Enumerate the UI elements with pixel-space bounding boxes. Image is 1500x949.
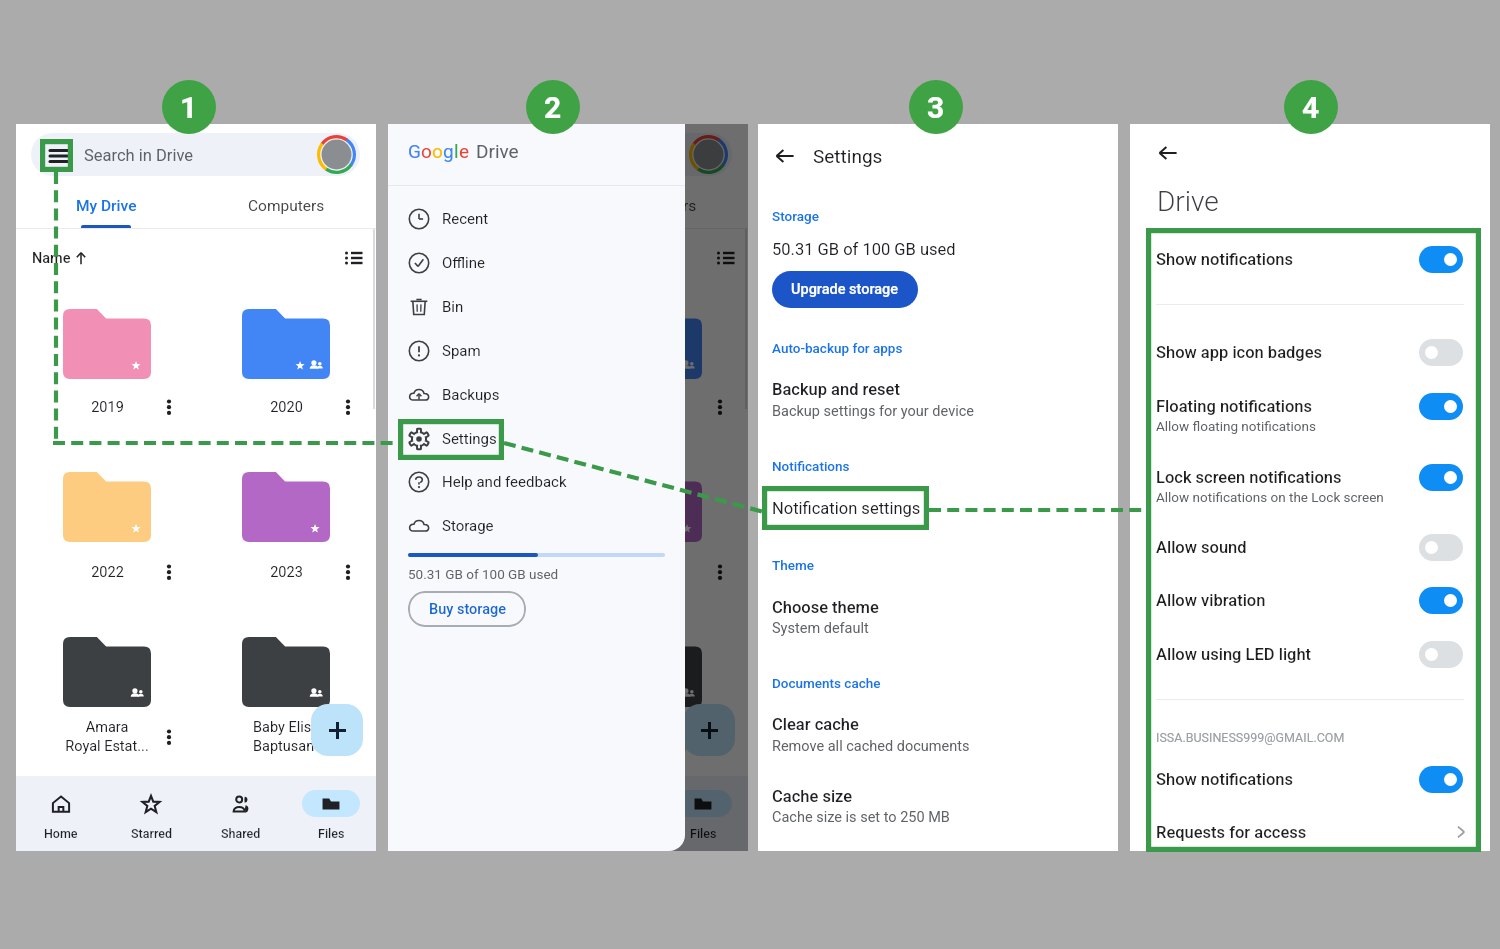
button[interactable]: My Drive <box>16 184 196 228</box>
button[interactable]: More options <box>337 559 359 585</box>
button[interactable]: Home <box>16 776 106 851</box>
button[interactable] <box>614 472 702 542</box>
button[interactable]: Amara Royal Estat... <box>63 713 151 761</box>
button[interactable] <box>388 285 685 329</box>
button[interactable]: Files <box>658 776 748 851</box>
button[interactable]: Back <box>775 146 795 166</box>
button[interactable]: More options <box>709 559 731 585</box>
button[interactable]: Menu <box>418 143 444 169</box>
button[interactable]: Back <box>1158 143 1178 163</box>
staticText: Auto-backup for apps <box>772 340 903 356</box>
button[interactable] <box>1130 386 1490 444</box>
button[interactable]: 2020 <box>242 383 330 431</box>
button[interactable] <box>1130 235 1490 283</box>
button[interactable] <box>242 309 330 379</box>
button[interactable]: Shared <box>196 776 286 851</box>
button[interactable]: Computers <box>568 184 748 228</box>
button[interactable]: More options <box>158 394 180 420</box>
staticText: Requests for access <box>1156 823 1307 842</box>
button[interactable]: Buy storage <box>408 591 526 627</box>
button[interactable] <box>388 373 685 417</box>
button[interactable]: More options <box>709 724 731 750</box>
button[interactable]: Files <box>286 776 376 851</box>
button[interactable]: More options <box>337 394 359 420</box>
button[interactable]: Account <box>689 135 728 174</box>
button[interactable]: Allow vibration on <box>1419 587 1463 614</box>
button[interactable]: Show notifications on <box>1419 246 1463 273</box>
button[interactable] <box>388 197 685 241</box>
button[interactable] <box>758 707 1118 761</box>
button[interactable]: Lock screen notifications on <box>1419 464 1463 491</box>
button[interactable] <box>1130 812 1490 852</box>
button[interactable]: Allow using LED light off <box>1419 641 1463 668</box>
button[interactable]: 2022 <box>435 548 523 596</box>
button[interactable] <box>31 133 360 176</box>
button[interactable]: My Drive <box>388 184 568 228</box>
button[interactable] <box>435 472 523 542</box>
button[interactable]: Create new <box>683 704 735 756</box>
button[interactable] <box>614 637 702 707</box>
button[interactable]: Starred <box>106 776 196 851</box>
button[interactable]: More options <box>709 394 731 420</box>
button[interactable] <box>1130 576 1490 624</box>
button[interactable]: 2020 <box>614 383 702 431</box>
staticText: Allow floating notifications <box>1156 418 1316 434</box>
button[interactable] <box>242 472 330 542</box>
button[interactable]: Upgrade storage <box>772 271 918 308</box>
button[interactable] <box>758 590 1118 644</box>
button[interactable]: More options <box>158 559 180 585</box>
button[interactable] <box>1130 755 1490 803</box>
button[interactable] <box>614 309 702 379</box>
button[interactable] <box>1130 328 1490 376</box>
button[interactable]: 2023 <box>242 548 330 596</box>
button[interactable] <box>1130 457 1490 515</box>
button[interactable] <box>388 460 685 504</box>
button[interactable]: Baby Elise Baptusam <box>242 713 330 761</box>
button[interactable] <box>242 637 330 707</box>
button[interactable]: More options <box>337 724 359 750</box>
staticText: Documents cache <box>772 675 881 691</box>
button[interactable] <box>1130 630 1490 678</box>
staticText: 50.31 GB of 100 GB used <box>408 566 559 582</box>
button[interactable]: Switch to list view <box>713 247 738 269</box>
button[interactable] <box>388 504 685 548</box>
button[interactable] <box>63 309 151 379</box>
button[interactable] <box>388 241 685 285</box>
button[interactable] <box>403 133 732 176</box>
button[interactable] <box>63 472 151 542</box>
button[interactable] <box>435 309 523 379</box>
button[interactable] <box>758 779 1118 833</box>
button[interactable] <box>1130 523 1490 571</box>
button[interactable]: Create new <box>311 704 363 756</box>
button[interactable]: Computers <box>196 184 376 228</box>
button[interactable]: 2023 <box>614 548 702 596</box>
staticText: Notification settings <box>772 499 921 518</box>
button[interactable]: Account <box>317 135 356 174</box>
button[interactable]: Menu <box>46 143 72 169</box>
button[interactable]: Baby Elise Baptusam <box>614 713 702 761</box>
button[interactable]: Switch to list view <box>341 247 366 269</box>
button[interactable]: Floating notifications on <box>1419 393 1463 420</box>
button[interactable]: 2019 <box>435 383 523 431</box>
button[interactable]: More options <box>158 724 180 750</box>
button[interactable] <box>388 417 685 461</box>
button[interactable]: 2019 <box>63 383 151 431</box>
button[interactable]: Allow sound off <box>1419 534 1463 561</box>
button[interactable] <box>758 490 1118 530</box>
button[interactable] <box>388 329 685 373</box>
staticText: 2022 <box>463 564 496 581</box>
button[interactable] <box>758 372 1118 426</box>
button[interactable]: More options <box>530 559 552 585</box>
button[interactable]: 2022 <box>63 548 151 596</box>
button[interactable]: Show app icon badges off <box>1419 339 1463 366</box>
button[interactable] <box>63 637 151 707</box>
button[interactable]: Show notifications on <box>1419 766 1463 793</box>
